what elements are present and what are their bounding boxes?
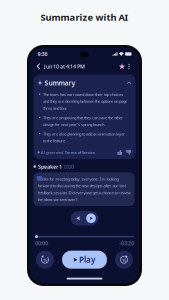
staticText: -03:20	[119, 240, 134, 247]
staticText: 00:00	[35, 240, 48, 247]
button[interactable]: Back 15 seconds	[36, 251, 54, 269]
button[interactable]: Back	[36, 63, 41, 70]
staticText: The team has narrowed down their top cho…	[43, 92, 127, 111]
staticText: Terms of Service	[65, 150, 95, 155]
staticText: Summary	[44, 78, 75, 87]
button[interactable]: Play this clip	[71, 211, 98, 225]
button[interactable]: Play	[62, 251, 107, 269]
button[interactable]: Bad summary	[126, 150, 131, 155]
staticText: Speaker 1	[38, 163, 62, 170]
button[interactable]: More options	[125, 63, 132, 70]
staticText: 0:00	[64, 163, 74, 170]
staticText: They are also planning to add an animati…	[43, 131, 125, 143]
staticText: Summarize with AI	[40, 11, 128, 23]
staticText: Jun 10 at 4:14 PM	[44, 63, 85, 70]
staticText: Play	[79, 254, 95, 265]
staticText: 15	[122, 257, 126, 263]
button[interactable]: Forward 15 seconds	[115, 251, 133, 269]
staticText: 9:36	[37, 50, 47, 58]
staticText: 15	[43, 257, 47, 263]
staticText: They are proposing that they can save th…	[43, 115, 123, 127]
button[interactable]: Good summary	[117, 150, 123, 155]
staticText: thanks for meeting today, everyone. I'm …	[37, 176, 130, 202]
staticText: AI generated.	[40, 150, 65, 155]
button[interactable]: Favourite	[118, 63, 125, 70]
